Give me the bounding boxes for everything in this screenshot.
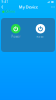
button[interactable]: Back — [0, 4, 5, 10]
staticText: Reset — [36, 35, 44, 38]
staticText: My Device — [18, 4, 37, 10]
button[interactable]: Reset — [28, 18, 53, 52]
button[interactable]: Power — [3, 18, 28, 52]
staticText: Online — [6, 10, 16, 13]
staticText: Power — [11, 35, 20, 38]
button[interactable]: More options — [49, 4, 56, 10]
staticText: 9:41 — [1, 0, 8, 4]
